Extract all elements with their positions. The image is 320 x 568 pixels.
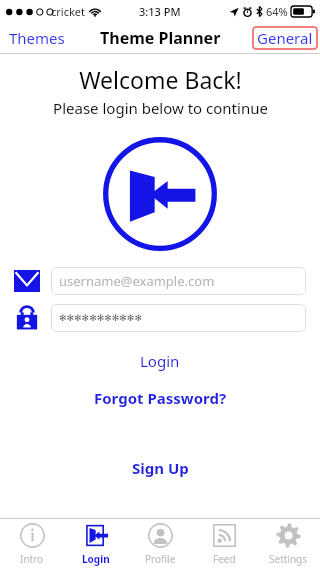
button[interactable]: Login xyxy=(101,135,219,253)
button[interactable]: Login xyxy=(122,348,198,374)
staticText: 3:13 PM xyxy=(139,4,181,19)
staticText: Settings xyxy=(269,552,308,566)
button[interactable]: Intro xyxy=(0,519,64,568)
staticText: username@example.com xyxy=(59,272,215,290)
staticText: Intro xyxy=(20,552,44,566)
button[interactable]: Sign Up xyxy=(114,455,207,481)
staticText: General xyxy=(257,28,313,48)
staticText: Login xyxy=(140,351,180,371)
button[interactable]: Login xyxy=(64,519,128,568)
staticText: Sign Up xyxy=(132,458,189,478)
staticText: Profile xyxy=(145,552,176,566)
staticText: Welcome Back! xyxy=(79,64,242,95)
staticText: Please login below to continue xyxy=(53,98,268,118)
staticText: Login xyxy=(82,552,110,566)
staticText: Theme Planner xyxy=(100,27,221,49)
button[interactable]: Themes xyxy=(0,24,74,52)
button[interactable]: username@example.com xyxy=(51,267,306,295)
button[interactable]: General xyxy=(252,26,318,50)
button[interactable]: Settings xyxy=(256,519,320,568)
button[interactable]: ✻✻✻✻✻✻✻✻✻✻✻ xyxy=(51,304,306,332)
button[interactable]: Forgot Password? xyxy=(76,385,245,411)
staticText: ✻✻✻✻✻✻✻✻✻✻✻ xyxy=(59,313,142,323)
button[interactable]: Feed xyxy=(192,519,256,568)
staticText: Forgot Password? xyxy=(94,388,227,408)
staticText: Feed xyxy=(213,552,236,566)
staticText: Themes xyxy=(9,28,65,48)
button[interactable]: Profile xyxy=(128,519,192,568)
staticText: 64% xyxy=(266,4,288,19)
staticText: cricket xyxy=(51,4,85,19)
